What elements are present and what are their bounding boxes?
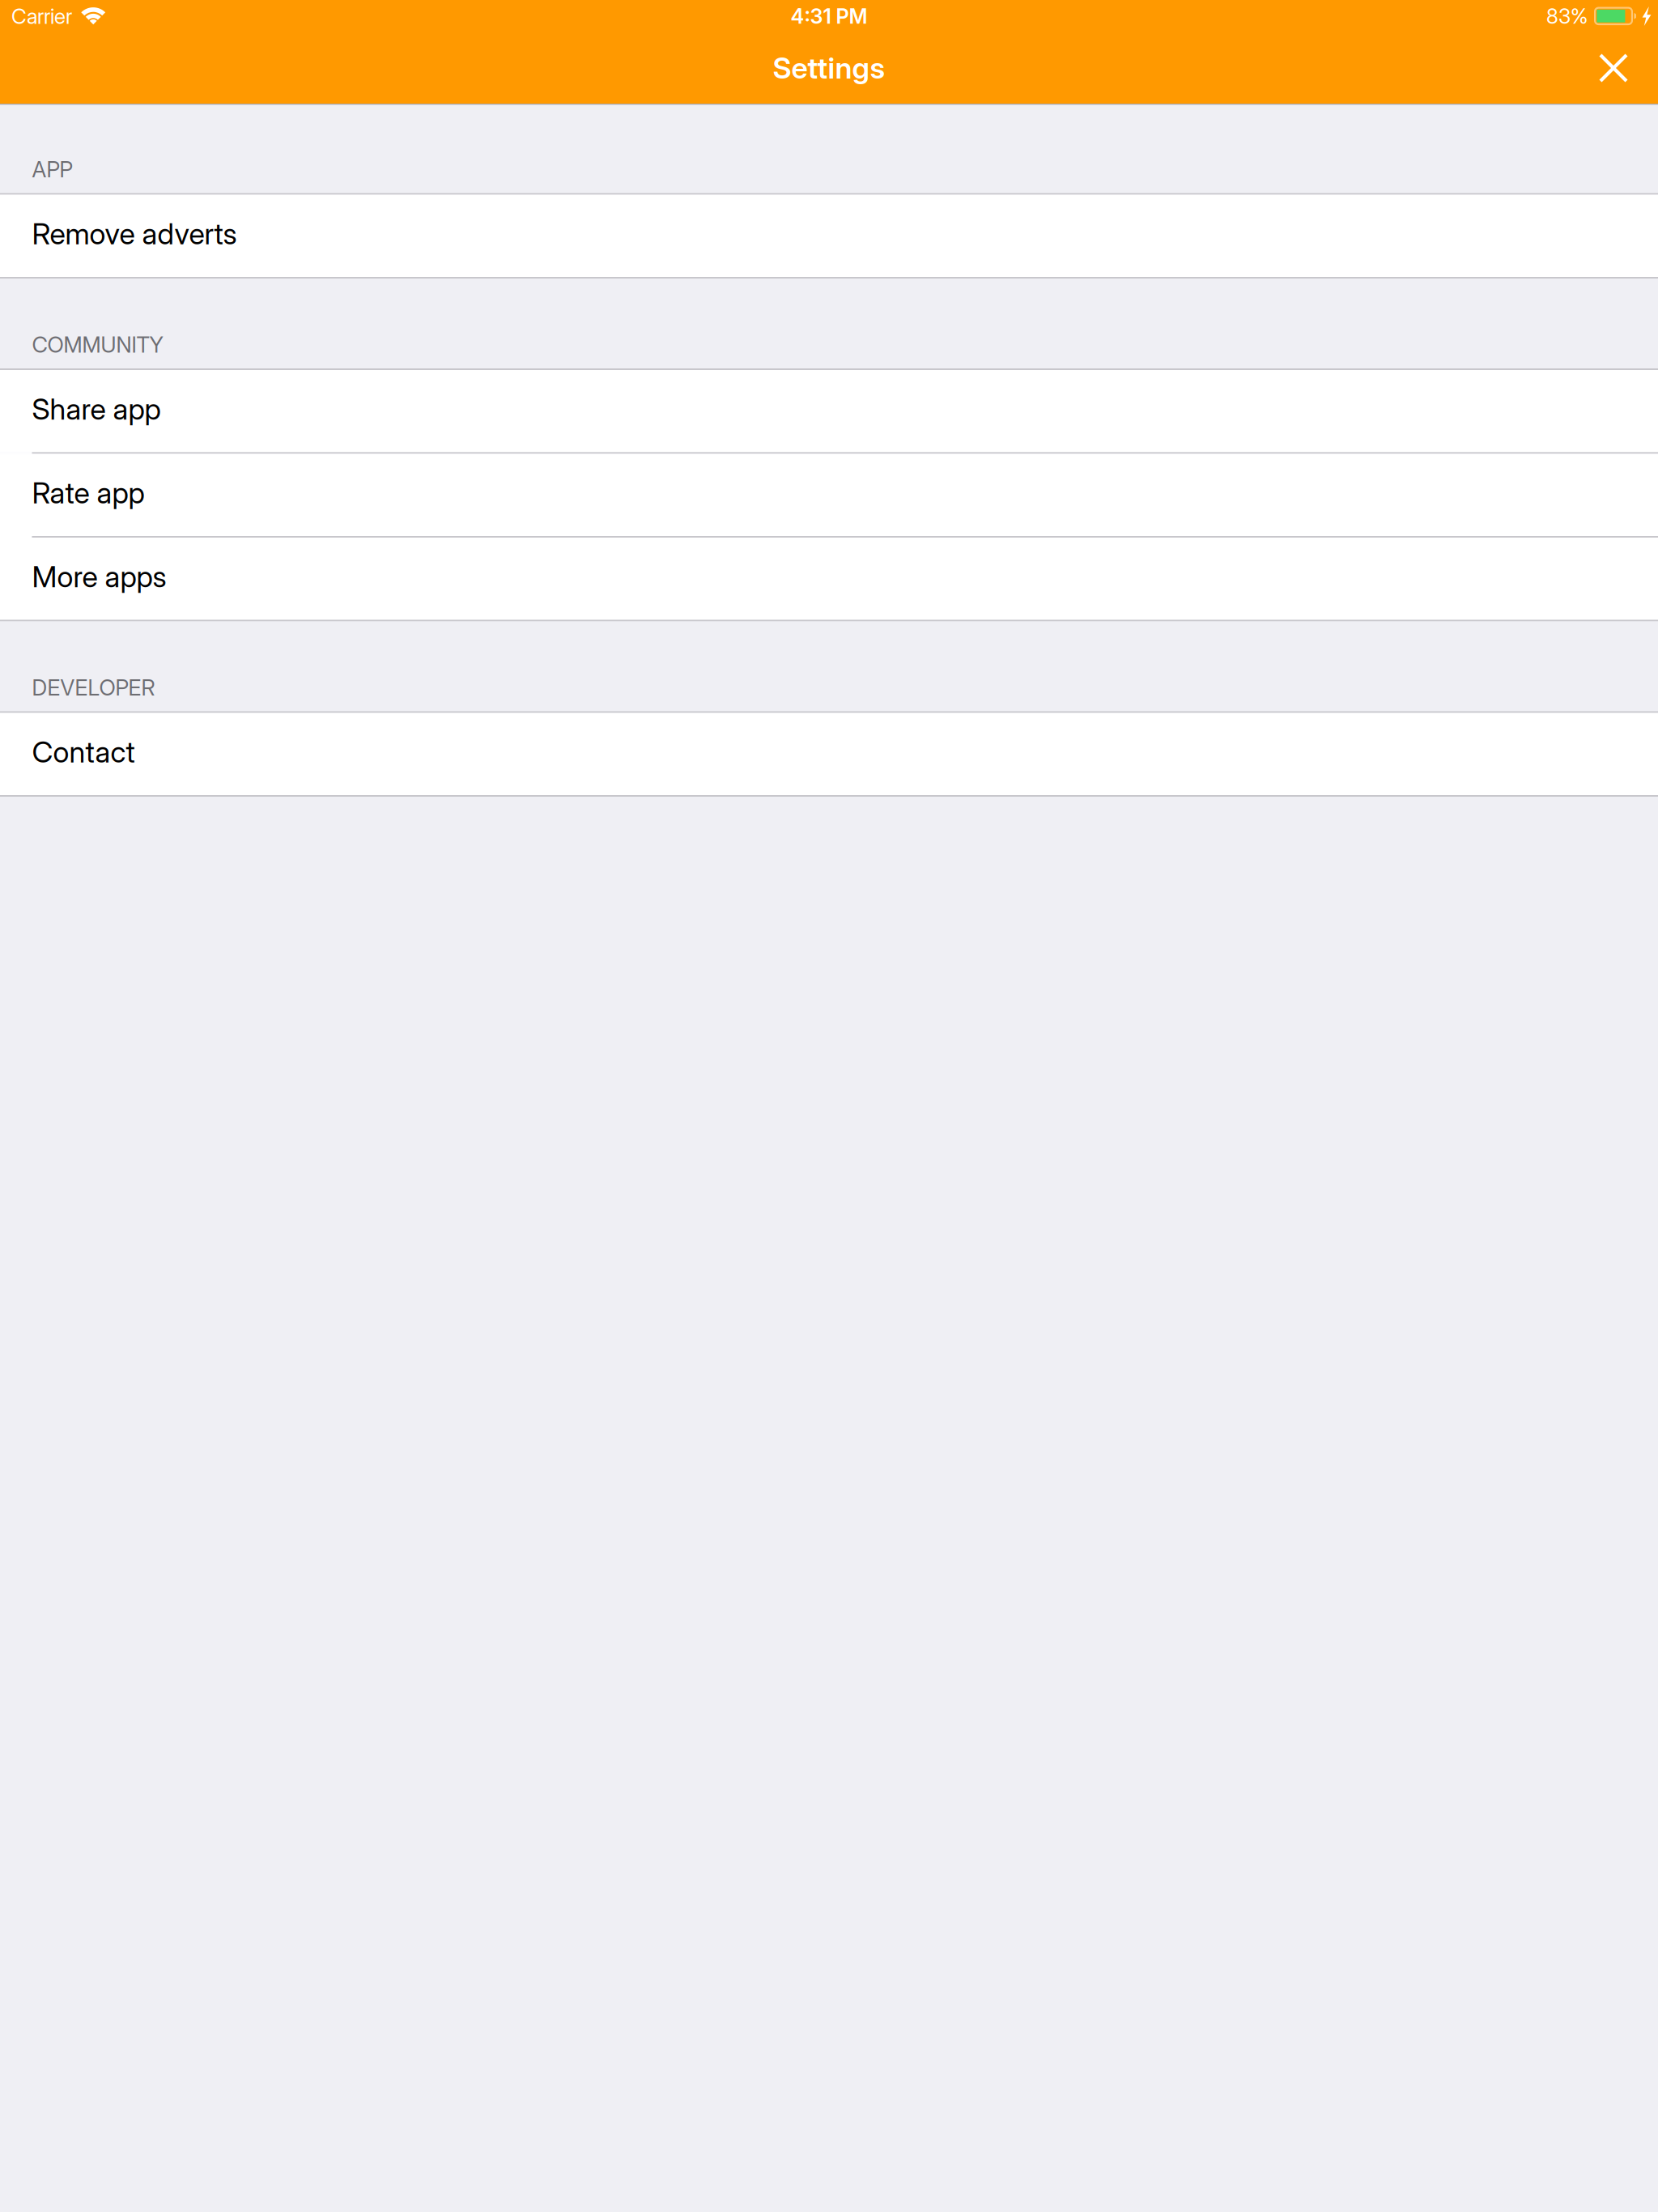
staticText: 83% [1546,4,1588,29]
staticText: Carrier [11,3,72,29]
staticText: Share app [32,391,161,427]
staticText: Remove adverts [32,216,237,251]
button[interactable]: Close [1584,38,1643,98]
staticText: Rate app [32,475,145,511]
staticText: Settings [773,50,885,86]
staticText: COMMUNITY [32,331,163,358]
staticText: APP [32,156,72,183]
staticText: DEVELOPER [32,674,155,701]
staticText: 4:31 PM [791,4,867,29]
button[interactable]: Remove adverts [0,195,1658,277]
staticText: More apps [32,559,166,594]
button[interactable]: More apps [0,538,1658,620]
staticText: Contact [32,734,135,770]
button[interactable]: Share app [0,370,1658,452]
button[interactable]: Contact [0,713,1658,795]
button[interactable]: Rate app [0,454,1658,536]
